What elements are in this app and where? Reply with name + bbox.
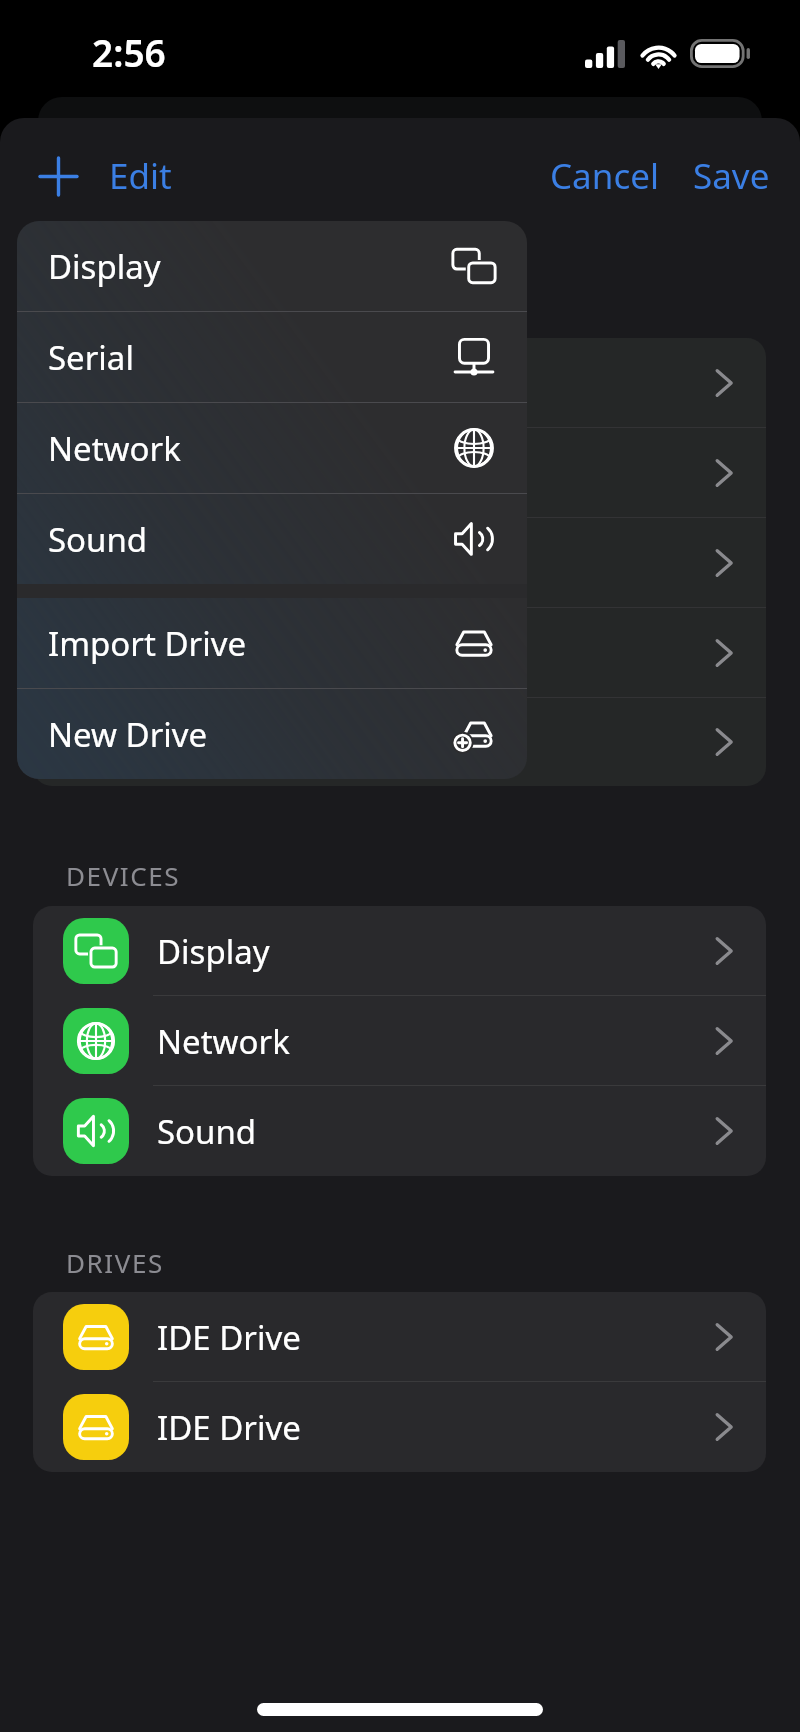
button[interactable]: IDE Drive — [33, 1292, 766, 1382]
staticText: Sound — [157, 1109, 257, 1154]
staticText: Serial — [48, 335, 134, 380]
button[interactable]: Serial — [17, 312, 527, 402]
staticText: Network — [48, 426, 181, 471]
button[interactable]: Sound — [33, 1086, 766, 1176]
staticText: Network — [157, 1019, 290, 1064]
button[interactable]: New Drive — [17, 689, 527, 779]
button[interactable]: List item — [33, 608, 766, 698]
button[interactable]: Cancel — [544, 142, 665, 210]
staticText: 2:56 — [92, 27, 166, 77]
staticText: Display — [48, 244, 161, 289]
button[interactable]: Network — [17, 403, 527, 493]
button[interactable]: List item — [33, 518, 766, 608]
button[interactable]: List item — [33, 338, 766, 428]
staticText: Sound — [48, 517, 148, 562]
button[interactable]: Import Drive — [17, 598, 527, 688]
button[interactable]: List item — [33, 698, 766, 786]
button[interactable]: Save — [687, 142, 776, 210]
button[interactable]: IDE Drive — [33, 1382, 766, 1472]
staticText: Display — [157, 929, 270, 974]
staticText: Cancel — [550, 152, 659, 200]
button[interactable]: Edit — [103, 142, 178, 210]
button[interactable]: Add — [22, 140, 94, 212]
button[interactable]: Display — [17, 221, 527, 311]
staticText: Save — [693, 152, 770, 200]
button[interactable]: Sound — [17, 494, 527, 584]
staticText: Import Drive — [48, 621, 247, 666]
button[interactable]: List item — [33, 428, 766, 518]
staticText: IDE Drive — [157, 1405, 301, 1450]
staticText: IDE Drive — [157, 1315, 301, 1360]
staticText: DRIVES — [66, 1245, 164, 1280]
staticText: Edit — [109, 152, 172, 200]
button[interactable]: Display — [33, 906, 766, 996]
staticText: New Drive — [48, 712, 208, 757]
staticText: DEVICES — [66, 858, 181, 893]
button[interactable]: Network — [33, 996, 766, 1086]
